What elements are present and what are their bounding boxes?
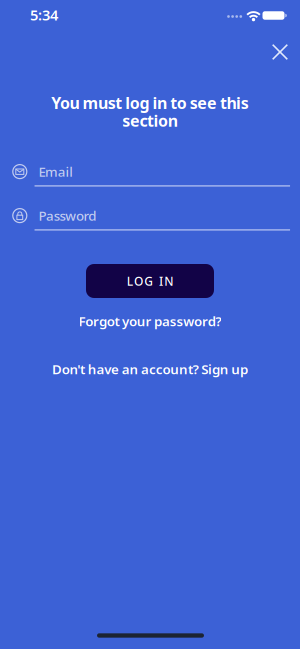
button[interactable]: Email <box>0 164 300 188</box>
staticText: Forgot your password? <box>78 312 221 330</box>
button[interactable]: LOG IN <box>86 264 214 298</box>
staticText: Don't have an account? Sign up <box>52 360 248 378</box>
button[interactable]: Don't have an account? Sign up <box>52 360 248 378</box>
staticText: Email <box>38 163 73 180</box>
staticText: 5:34 <box>30 5 58 24</box>
staticText: You must log in to see this <box>51 92 249 113</box>
button[interactable]: Close <box>268 40 292 64</box>
staticText: section <box>122 110 178 131</box>
button[interactable]: Forgot your password? <box>78 312 221 330</box>
staticText: LOG IN <box>127 273 173 289</box>
staticText: Password <box>38 207 96 224</box>
button[interactable]: Password <box>0 208 300 232</box>
